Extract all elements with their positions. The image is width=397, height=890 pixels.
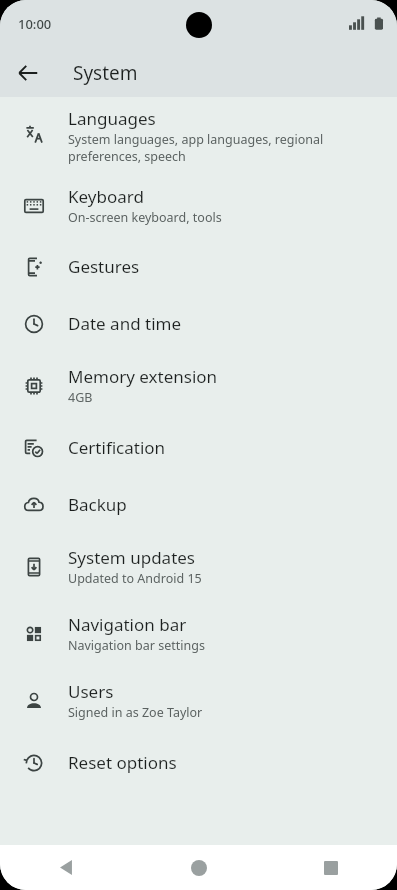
staticText: Memory extension (68, 365, 218, 388)
button[interactable]: Gestures (0, 238, 397, 295)
button[interactable]: Home (133, 845, 265, 890)
button[interactable]: Memory extension (0, 352, 397, 419)
staticText: Users (68, 680, 114, 703)
button[interactable]: System updates (0, 533, 397, 600)
button[interactable]: Navigation bar (0, 600, 397, 667)
button[interactable]: Keyboard (0, 173, 397, 238)
staticText: Updated to Android 15 (68, 570, 202, 587)
staticText: System updates (68, 546, 196, 569)
staticText: Date and time (68, 312, 182, 335)
staticText: Signed in as Zoe Taylor (68, 704, 203, 721)
button[interactable]: Date and time (0, 295, 397, 352)
button[interactable]: Users (0, 667, 397, 734)
staticText: Certification (68, 436, 166, 459)
staticText: Keyboard (68, 185, 144, 208)
button[interactable]: Recent apps (265, 845, 397, 890)
button[interactable]: Certification (0, 419, 397, 476)
button[interactable]: Languages (0, 97, 397, 173)
staticText: 10:00 (18, 15, 52, 33)
button[interactable]: Back (8, 53, 48, 93)
staticText: System languages, app languages, regiona… (68, 131, 324, 164)
button[interactable]: Back (0, 845, 133, 890)
button[interactable]: Reset options (0, 734, 397, 791)
button[interactable]: Backup (0, 476, 397, 533)
staticText: Gestures (68, 255, 140, 278)
staticText: Reset options (68, 751, 177, 774)
staticText: Navigation bar settings (68, 637, 205, 654)
staticText: System (73, 60, 138, 86)
staticText: Navigation bar (68, 613, 187, 636)
staticText: 4GB (68, 389, 93, 406)
staticText: Backup (68, 493, 127, 516)
staticText: On-screen keyboard, tools (68, 209, 222, 226)
staticText: Languages (68, 107, 156, 130)
